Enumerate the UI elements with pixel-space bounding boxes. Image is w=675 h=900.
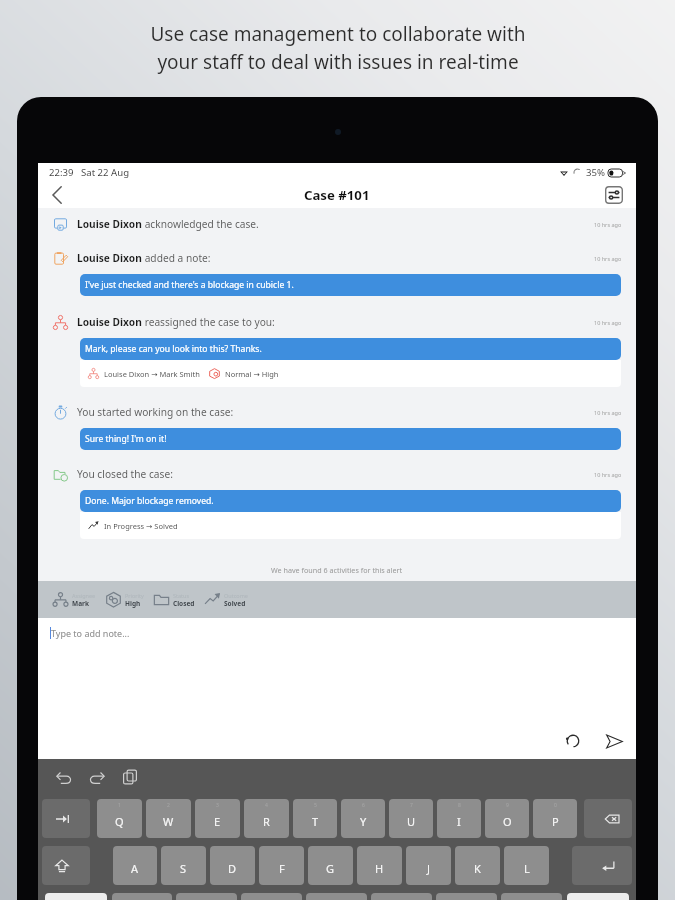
button[interactable]: 4 <box>244 799 289 838</box>
button[interactable]: Louise Dixon <box>53 306 622 338</box>
button[interactable]: 2 <box>146 799 191 838</box>
button[interactable]: Shift <box>567 893 629 900</box>
staticText: Priority <box>125 592 144 599</box>
button[interactable]: K <box>455 846 500 885</box>
button[interactable]: J <box>406 846 451 885</box>
button[interactable]: You closed the case: <box>53 458 622 490</box>
button[interactable]: V <box>306 893 367 900</box>
button[interactable]: bksp <box>584 799 632 838</box>
staticText: Use case management to collaborate with <box>150 21 526 47</box>
staticText: H <box>375 861 384 876</box>
staticText: Louise Dixon → Mark Smith <box>104 369 200 379</box>
button[interactable]: C <box>241 893 302 900</box>
button[interactable]: A <box>113 846 157 885</box>
staticText: Louise Dixon <box>77 217 142 231</box>
staticText: High <box>125 599 141 608</box>
button[interactable]: X <box>176 893 237 900</box>
button[interactable]: Filter settings <box>603 184 625 206</box>
button[interactable]: 9 <box>485 799 529 838</box>
button[interactable]: Louise Dixon <box>53 242 622 274</box>
button[interactable]: Send <box>602 729 626 753</box>
button[interactable]: Louise Dixon <box>53 208 622 240</box>
staticText: 4 <box>265 802 268 809</box>
button[interactable]: D <box>210 846 255 885</box>
button[interactable]: 8 <box>437 799 481 838</box>
button[interactable]: H <box>357 846 402 885</box>
button[interactable]: Undo <box>561 729 585 753</box>
button[interactable]: Mark, please can you look into this? Tha… <box>80 338 621 360</box>
button[interactable]: shift <box>42 846 90 885</box>
button[interactable]: Z <box>112 893 172 900</box>
button[interactable]: You started working on the case: <box>53 396 622 428</box>
button[interactable]: 6 <box>341 799 385 838</box>
button[interactable]: Redo <box>88 768 106 786</box>
button[interactable]: M <box>501 893 562 900</box>
staticText: Y <box>360 814 367 829</box>
button[interactable]: 5 <box>293 799 337 838</box>
staticText: I <box>457 814 461 829</box>
staticText: 10 hrs ago <box>594 409 622 416</box>
staticText: 0 <box>554 802 557 809</box>
button[interactable]: 0 <box>533 799 577 838</box>
button[interactable]: Assignee <box>52 591 96 608</box>
staticText: T <box>312 814 319 829</box>
button[interactable]: Numbers <box>45 893 107 900</box>
staticText: Solved <box>224 599 246 608</box>
button[interactable]: L <box>504 846 549 885</box>
button[interactable]: F <box>259 846 304 885</box>
button[interactable]: 1 <box>97 799 142 838</box>
staticText: 2 <box>167 802 170 809</box>
staticText: Status <box>173 592 190 599</box>
button[interactable]: tab <box>42 799 90 838</box>
button[interactable]: enter <box>572 846 632 885</box>
staticText: Closed <box>173 599 195 608</box>
staticText: S <box>180 861 187 876</box>
staticText: Louise Dixon <box>77 315 142 329</box>
staticText: 10 hrs ago <box>594 221 622 228</box>
staticText: I've just checked and there's a blockage… <box>85 279 294 291</box>
button[interactable]: I've just checked and there's a blockage… <box>80 274 621 296</box>
staticText: added a note: <box>142 251 211 265</box>
staticText: 10 hrs ago <box>594 319 622 326</box>
staticText: acknowledged the case. <box>142 217 259 231</box>
staticText: L <box>524 861 530 876</box>
staticText: In Progress → Solved <box>104 521 178 531</box>
button[interactable]: Paste <box>121 768 139 786</box>
staticText: Outcome <box>224 592 248 599</box>
button[interactable]: Undo <box>55 768 73 786</box>
staticText: 10 hrs ago <box>594 255 622 262</box>
staticText: You started working on the case: <box>77 405 234 419</box>
staticText: your staff to deal with issues in real-t… <box>157 49 519 75</box>
button[interactable]: S <box>161 846 206 885</box>
staticText: Louise Dixon <box>77 251 142 265</box>
button[interactable]: N <box>436 893 497 900</box>
button[interactable]: Back <box>46 184 68 206</box>
staticText: 5 <box>314 802 317 809</box>
staticText: 3 <box>216 802 219 809</box>
staticText: D <box>228 861 237 876</box>
button[interactable]: Priority <box>105 591 144 608</box>
staticText: Sat 22 Aug <box>81 166 130 179</box>
staticText: F <box>279 861 285 876</box>
button[interactable]: In Progress → Solved <box>88 512 613 539</box>
staticText: You closed the case: <box>77 467 173 481</box>
staticText: We have found 6 activities for this aler… <box>271 565 403 575</box>
staticText: Assignee <box>72 592 96 599</box>
button[interactable]: G <box>308 846 353 885</box>
staticText: Mark <box>72 599 89 608</box>
button[interactable]: Done. Major blockage removed. <box>80 490 621 512</box>
staticText: Q <box>115 814 124 829</box>
staticText: 1 <box>118 802 121 809</box>
staticText: K <box>474 861 481 876</box>
staticText: 6 <box>362 802 365 809</box>
staticText: 22:39 <box>49 166 74 179</box>
button[interactable]: Outcome <box>204 591 248 608</box>
staticText: 8 <box>458 802 461 809</box>
button[interactable]: B <box>371 893 432 900</box>
button[interactable]: Status <box>153 591 195 608</box>
button[interactable]: 3 <box>195 799 240 838</box>
button[interactable]: Sure thing! I'm on it! <box>80 428 621 450</box>
button[interactable]: 7 <box>389 799 433 838</box>
staticText: reassigned the case to you: <box>142 315 275 329</box>
button[interactable]: Louise Dixon → Mark Smith <box>88 360 613 387</box>
